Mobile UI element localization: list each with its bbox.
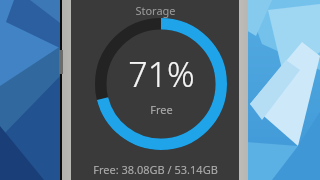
staticText: Free: 38.08GB / 53.14GB [93, 162, 218, 177]
staticText: Free [150, 102, 173, 117]
button[interactable]: Free: 38.08GB / 53.14GB [71, 161, 239, 177]
staticText: 71% [128, 51, 195, 97]
button[interactable]: Storage gauge, 71 percent free [95, 18, 227, 150]
button[interactable]: Storage [71, 2, 239, 18]
staticText: Storage [135, 3, 176, 18]
